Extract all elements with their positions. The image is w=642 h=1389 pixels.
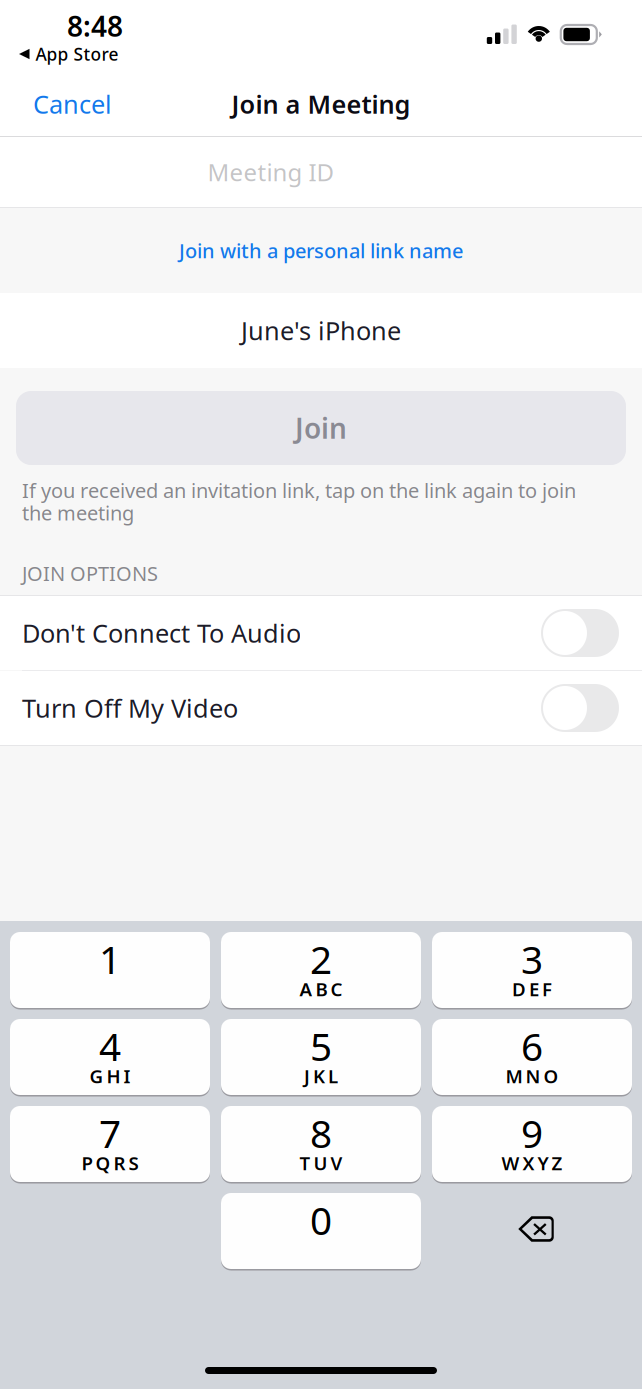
button[interactable]: Delete	[432, 1192, 632, 1270]
staticText: R	[113, 1151, 125, 1175]
staticText: Q	[95, 1151, 110, 1175]
staticText: W	[501, 1151, 519, 1175]
button[interactable]: 1	[10, 931, 210, 1009]
staticText: June's iPhone	[241, 314, 401, 347]
staticText: Meeting ID	[207, 156, 334, 188]
staticText: 7	[99, 1107, 121, 1159]
button[interactable]: 3	[432, 931, 632, 1009]
button[interactable]: 5	[221, 1018, 421, 1096]
staticText: 3	[521, 933, 543, 985]
staticText: E	[529, 977, 539, 1001]
staticText: App Store	[35, 42, 118, 65]
staticText: 1	[99, 933, 121, 985]
staticText: H	[106, 1064, 120, 1088]
staticText: Join a Meeting	[231, 87, 410, 121]
staticText: 6	[521, 1020, 543, 1072]
staticText: F	[542, 977, 552, 1001]
staticText: G	[89, 1064, 103, 1088]
staticText: 4	[99, 1020, 121, 1072]
staticText: A	[299, 977, 312, 1001]
button[interactable]: 0	[221, 1192, 421, 1270]
staticText: Y	[537, 1151, 548, 1175]
staticText: Turn Off My Video	[22, 691, 238, 725]
staticText: Join with a personal link name	[179, 237, 463, 264]
staticText: 8:48	[67, 7, 123, 45]
staticText: I	[123, 1064, 130, 1088]
button[interactable]: 9	[432, 1105, 632, 1183]
button[interactable]: Meeting ID	[0, 137, 642, 207]
staticText: L	[328, 1064, 338, 1088]
staticText: Cancel	[33, 87, 112, 121]
button[interactable]: Join with a personal link name	[0, 208, 642, 293]
button[interactable]: 2	[221, 931, 421, 1009]
staticText: Don't Connect To Audio	[22, 616, 301, 650]
button[interactable]: Don't Connect To Audio	[0, 596, 642, 670]
button[interactable]: 8	[221, 1105, 421, 1183]
staticText: U	[313, 1151, 327, 1175]
staticText: Join	[295, 409, 347, 447]
button[interactable]: June's iPhone	[0, 293, 642, 368]
staticText: O	[543, 1064, 558, 1088]
staticText: Z	[551, 1151, 562, 1175]
staticText: V	[330, 1151, 342, 1175]
button[interactable]: Cancel	[19, 75, 126, 133]
staticText: C	[330, 977, 342, 1001]
staticText: K	[313, 1064, 325, 1088]
staticText: If you received an invitation link, tap …	[22, 477, 576, 526]
button[interactable]: 6	[432, 1018, 632, 1096]
staticText: P	[81, 1151, 92, 1175]
staticText: B	[315, 977, 327, 1001]
staticText: M	[505, 1064, 522, 1088]
staticText: 5	[310, 1020, 332, 1072]
staticText: 2	[310, 933, 332, 985]
staticText: T	[299, 1151, 310, 1175]
staticText: N	[525, 1064, 540, 1088]
button[interactable]: 4	[10, 1018, 210, 1096]
staticText: JOIN OPTIONS	[22, 560, 158, 586]
staticText: 8	[310, 1107, 332, 1159]
button[interactable]: 7	[10, 1105, 210, 1183]
staticText: 9	[521, 1107, 543, 1159]
staticText: X	[522, 1151, 534, 1175]
button[interactable]: Join	[0, 368, 642, 465]
staticText: S	[128, 1151, 138, 1175]
staticText: J	[304, 1064, 310, 1088]
button[interactable]: Turn Off My Video	[0, 671, 642, 745]
staticText: D	[512, 977, 526, 1001]
staticText: 0	[310, 1194, 332, 1246]
